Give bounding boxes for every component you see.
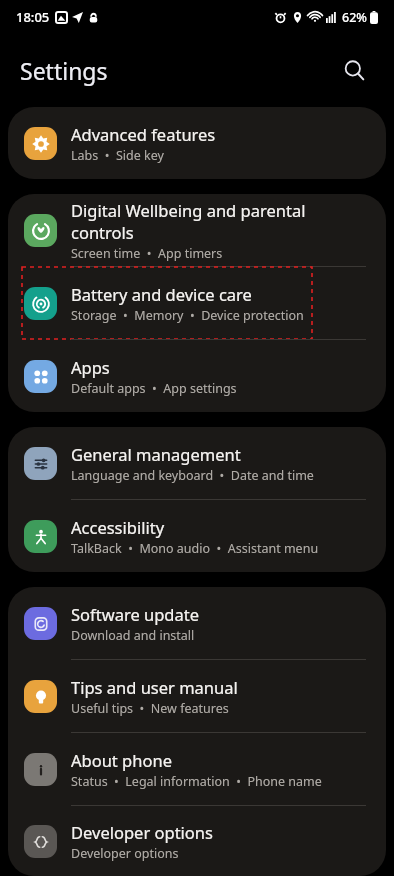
button[interactable]: Search settings [334,50,374,90]
staticText: Language and keyboard • Date and time [71,467,314,484]
button[interactable]: Software update [8,587,386,659]
staticText: Storage • Memory • Device protection [71,307,304,324]
staticText: Software update [71,603,199,625]
staticText: 18:05 [16,8,50,26]
staticText: Useful tips • New features [71,700,229,717]
staticText: Settings [20,55,108,86]
staticText: Digital Wellbeing and parental controls [71,199,370,243]
staticText: 62% [342,9,367,26]
button[interactable]: Tips and user manual [8,660,386,732]
button[interactable]: Battery and device care [8,267,386,339]
staticText: Status • Legal information • Phone name [71,773,322,790]
staticText: Advanced features [71,123,216,145]
button[interactable]: Digital Wellbeing and parental controls [8,194,386,266]
staticText: Tips and user manual [71,676,238,698]
staticText: TalkBack • Mono audio • Assistant menu [71,540,319,557]
staticText: About phone [71,749,172,771]
button[interactable]: About phone [8,733,386,805]
staticText: Screen time • App timers [71,245,223,262]
staticText: Developer options [71,845,179,862]
staticText: Default apps • App settings [71,380,237,397]
button[interactable]: Apps [8,340,386,412]
button[interactable]: Advanced features [8,107,386,179]
button[interactable]: General management [8,427,386,499]
staticText: Download and install [71,627,195,644]
button[interactable]: Developer options [8,806,386,876]
staticText: Accessibility [71,516,165,538]
staticText: Labs • Side key [71,147,164,164]
staticText: Battery and device care [71,283,252,305]
staticText: Developer options [71,821,213,843]
staticText: General management [71,443,241,465]
button[interactable]: Accessibility [8,500,386,572]
staticText: Apps [71,356,110,378]
